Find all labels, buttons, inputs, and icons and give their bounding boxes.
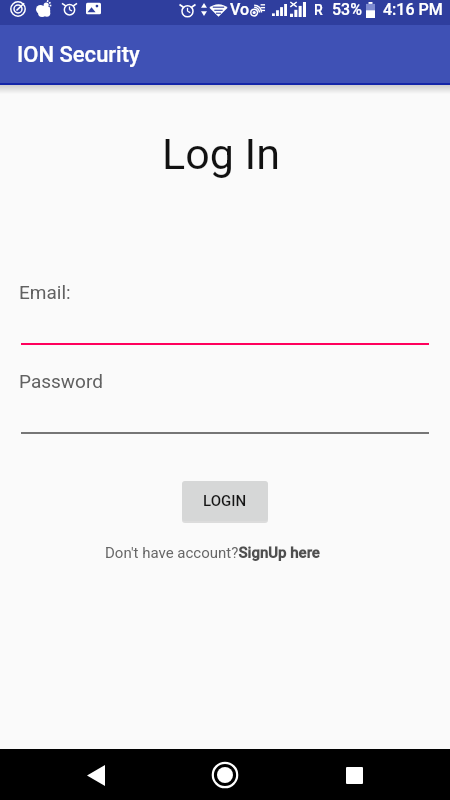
button[interactable]: Back bbox=[72, 751, 120, 799]
staticText: R bbox=[314, 2, 323, 18]
staticText: LOGIN bbox=[203, 492, 247, 510]
button[interactable]: Don't have account?SignUp here bbox=[105, 544, 320, 562]
button[interactable]: ION Security bbox=[0, 25, 450, 85]
staticText: ION Security bbox=[17, 42, 140, 68]
staticText: 4:16 PM bbox=[383, 0, 443, 19]
staticText: Email: bbox=[19, 281, 71, 303]
staticText: Log In bbox=[0, 129, 446, 179]
staticText: 53% bbox=[332, 0, 362, 19]
button[interactable]: LOGIN bbox=[182, 481, 268, 521]
staticText: Password bbox=[19, 370, 103, 392]
staticText: Vo bbox=[230, 0, 250, 19]
button[interactable]: Recents bbox=[330, 751, 378, 799]
button[interactable]: Home bbox=[201, 751, 249, 799]
